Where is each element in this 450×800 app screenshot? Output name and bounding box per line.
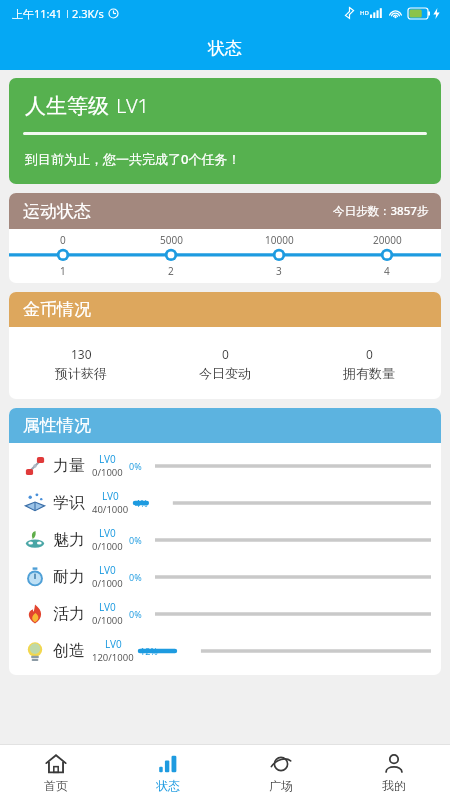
button[interactable]: 我的 [337, 745, 450, 800]
staticText: LV0 [102, 489, 119, 503]
staticText: 130 [71, 346, 92, 362]
staticText: HD [360, 9, 369, 17]
staticText: 0% [129, 608, 142, 620]
staticText: 2.3K/s [72, 6, 104, 21]
staticText: 4% [135, 497, 148, 509]
staticText: 0 [60, 233, 66, 247]
staticText: LV0 [105, 637, 122, 651]
staticText: 力量 [53, 456, 85, 476]
staticText: 0% [129, 460, 142, 472]
button[interactable]: 运动状态 [9, 193, 441, 229]
button[interactable]: 人生等级 [9, 78, 441, 184]
staticText: 属性情况 [23, 415, 91, 436]
staticText: 12% [140, 645, 158, 657]
staticText: 0/1000 [92, 466, 123, 479]
staticText: 0% [129, 534, 142, 546]
staticText: 活力 [53, 604, 85, 624]
staticText: 40/1000 [92, 503, 129, 516]
button[interactable]: 金币情况 [9, 292, 441, 327]
button[interactable]: 力量 [9, 447, 441, 484]
button[interactable]: 属性情况 [9, 408, 441, 443]
staticText: LV1 [116, 92, 149, 119]
button[interactable]: 130 [9, 346, 153, 381]
button[interactable]: 学识 [9, 484, 441, 521]
staticText: 到目前为止，您一共完成了0个任务！ [25, 150, 241, 168]
staticText: 状态 [208, 38, 242, 59]
staticText: 0 [366, 346, 373, 362]
staticText: 创造 [53, 641, 85, 661]
staticText: 0/1000 [92, 577, 123, 590]
staticText: LV0 [99, 452, 116, 466]
button[interactable]: 魅力 [9, 521, 441, 558]
staticText: 人生等级 [25, 93, 109, 119]
staticText: 金币情况 [23, 299, 91, 320]
staticText: 0/1000 [92, 540, 123, 553]
staticText: 0% [129, 571, 142, 583]
staticText: 广场 [269, 778, 293, 793]
staticText: 学识 [53, 493, 85, 513]
staticText: 10000 [265, 233, 294, 247]
staticText: LV0 [99, 600, 116, 614]
staticText: 120/1000 [92, 651, 134, 664]
staticText: 1 [60, 264, 66, 278]
staticText: 今日步数：3857步 [333, 203, 429, 219]
staticText: 0 [222, 346, 229, 362]
button[interactable]: 0 [153, 346, 297, 381]
staticText: 5000 [160, 233, 183, 247]
button[interactable]: 耐力 [9, 558, 441, 595]
staticText: 3 [276, 264, 282, 278]
staticText: LV0 [99, 526, 116, 540]
button[interactable]: 广场 [224, 745, 337, 800]
button[interactable]: 状态 [112, 745, 224, 800]
staticText: 今日变动 [199, 365, 251, 381]
staticText: 预计获得 [55, 365, 107, 381]
staticText: 4 [384, 264, 390, 278]
staticText: 状态 [156, 778, 180, 793]
button[interactable]: 活力 [9, 595, 441, 632]
button[interactable]: 0 [297, 346, 441, 381]
staticText: LV0 [99, 563, 116, 577]
button[interactable]: 首页 [0, 745, 112, 800]
staticText: 首页 [44, 778, 68, 793]
staticText: 上午11:41 [12, 6, 63, 21]
staticText: 运动状态 [23, 201, 91, 222]
staticText: 2 [168, 264, 174, 278]
staticText: 拥有数量 [343, 365, 395, 381]
staticText: 0/1000 [92, 614, 123, 627]
staticText: 耐力 [53, 567, 85, 587]
staticText: 魅力 [53, 530, 85, 550]
staticText: 我的 [382, 778, 406, 793]
button[interactable]: 创造 [9, 632, 441, 669]
staticText: 20000 [373, 233, 402, 247]
